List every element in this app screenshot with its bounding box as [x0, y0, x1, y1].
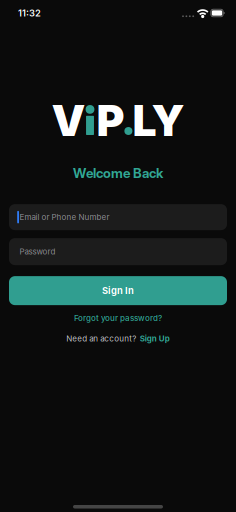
staticText: LY [132, 95, 184, 146]
staticText: Sign Up [140, 334, 170, 343]
button[interactable]: Email or Phone Number [9, 204, 227, 230]
staticText: P [96, 95, 124, 146]
staticText: Forgot your password? [74, 313, 162, 323]
staticText: 11:32 [18, 7, 41, 19]
button[interactable]: Password [9, 238, 227, 265]
staticText: Password [19, 247, 55, 256]
button[interactable]: Sign Up [140, 334, 170, 343]
staticText: Sign In [102, 285, 134, 296]
button[interactable]: Sign In [9, 276, 227, 305]
button[interactable]: Forgot your password? [68, 311, 168, 325]
staticText: Need an account? [66, 334, 136, 343]
staticText: Welcome Back [73, 165, 163, 181]
staticText: V [52, 95, 86, 146]
staticText: Email or Phone Number [20, 212, 110, 222]
